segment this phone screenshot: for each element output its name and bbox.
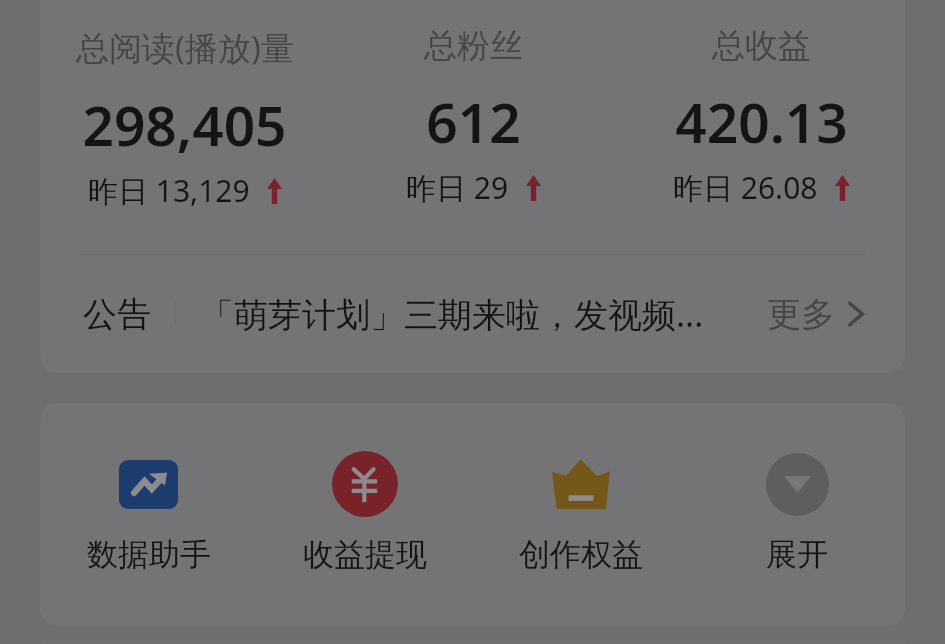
- button[interactable]: 公告: [40, 255, 905, 373]
- other: 收益提现: [332, 451, 398, 517]
- staticText: 总粉丝: [424, 25, 523, 67]
- button[interactable]: 创作权益: [473, 451, 689, 574]
- other: 上升: [835, 175, 850, 201]
- staticText: 总收益: [712, 25, 811, 67]
- staticText: 昨日 29: [406, 167, 509, 208]
- button[interactable]: 展开: [689, 451, 905, 574]
- staticText: 创作权益: [519, 535, 643, 574]
- staticText: 昨日 13,129: [88, 170, 250, 211]
- button[interactable]: 总粉丝: [329, 0, 617, 208]
- staticText: 昨日 26.08: [673, 167, 818, 208]
- staticText: 420.13: [675, 84, 848, 159]
- staticText: 收益提现: [303, 535, 427, 574]
- staticText: 数据助手: [87, 535, 211, 574]
- staticText: 公告: [83, 293, 151, 336]
- button[interactable]: 总阅读(播放)量: [40, 0, 329, 211]
- button[interactable]: 数据助手: [40, 451, 257, 574]
- staticText: 更多: [767, 293, 835, 336]
- button[interactable]: 总收益: [617, 0, 905, 208]
- other: 上升: [526, 175, 541, 201]
- other: 数据助手: [119, 460, 178, 509]
- other: 上升: [267, 178, 282, 204]
- staticText: 展开: [766, 535, 828, 574]
- button[interactable]: 收益提现: [257, 451, 473, 574]
- staticText: 612: [426, 84, 521, 159]
- staticText: 298,405: [82, 87, 287, 162]
- staticText: 「萌芽计划」三期来啦，发视频...: [200, 291, 704, 337]
- other: 展开: [766, 453, 829, 516]
- other: 创作权益: [552, 459, 610, 509]
- staticText: 总阅读(播放)量: [76, 25, 294, 70]
